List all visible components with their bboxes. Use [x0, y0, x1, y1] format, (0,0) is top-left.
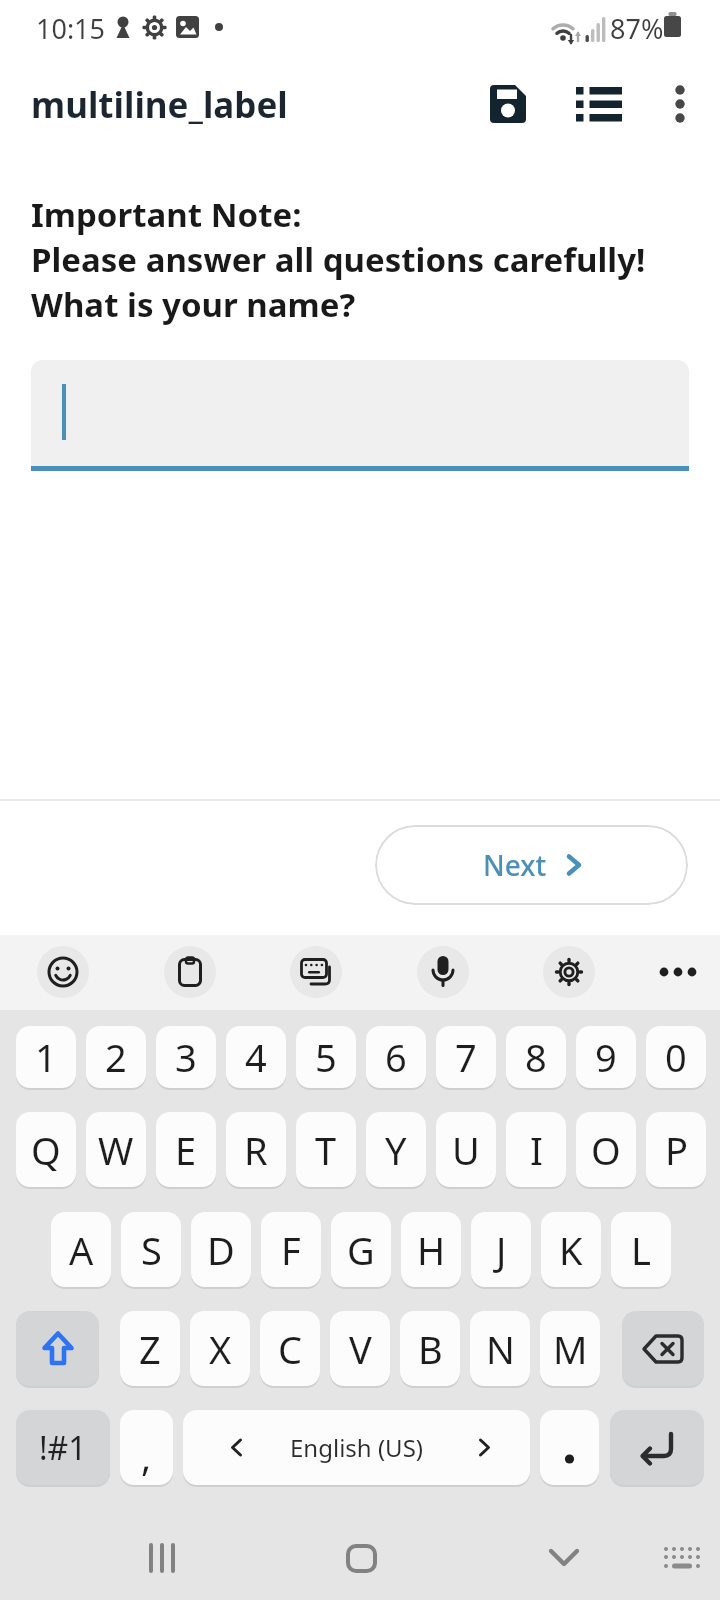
staticText: 5 — [315, 1031, 337, 1083]
staticText: multiline_label — [31, 81, 288, 129]
staticText: S — [141, 1224, 162, 1276]
staticText: 0 — [665, 1031, 687, 1083]
staticText: X — [209, 1323, 232, 1375]
staticText: 7 — [455, 1031, 477, 1083]
staticText: H — [417, 1224, 446, 1276]
button[interactable]: F — [261, 1212, 321, 1287]
button[interactable]: Q — [16, 1112, 76, 1187]
button[interactable]: V — [330, 1311, 390, 1386]
staticText: !#1 — [39, 1426, 87, 1470]
button[interactable]: O — [576, 1112, 636, 1187]
button[interactable]: Y — [366, 1112, 426, 1187]
button[interactable]: R — [226, 1112, 286, 1187]
button[interactable] — [417, 946, 469, 998]
button[interactable] — [534, 1528, 594, 1588]
button[interactable]: Z — [120, 1311, 180, 1386]
button[interactable] — [652, 1528, 712, 1588]
button[interactable]: N — [470, 1311, 530, 1386]
staticText: 2 — [105, 1031, 127, 1083]
button[interactable]: H — [401, 1212, 461, 1287]
button[interactable] — [610, 1410, 704, 1485]
staticText: Z — [139, 1323, 161, 1375]
button[interactable]: , — [120, 1410, 173, 1485]
staticText: T — [315, 1124, 337, 1176]
staticText: P — [665, 1124, 688, 1176]
button[interactable]: W — [86, 1112, 146, 1187]
button[interactable]: 5 — [296, 1026, 356, 1088]
staticText: Q — [31, 1124, 61, 1176]
button[interactable]: K — [541, 1212, 601, 1287]
button[interactable] — [37, 946, 89, 998]
button[interactable] — [164, 946, 216, 998]
button[interactable] — [573, 78, 625, 130]
staticText: 9 — [595, 1031, 617, 1083]
button[interactable] — [654, 78, 706, 130]
staticText: L — [631, 1224, 651, 1276]
button[interactable]: 0 — [646, 1026, 706, 1088]
staticText: K — [559, 1224, 583, 1276]
staticText: O — [591, 1124, 621, 1176]
staticText: 3 — [175, 1031, 197, 1083]
staticText: , — [141, 1430, 152, 1482]
staticText: E — [175, 1124, 197, 1176]
button[interactable] — [650, 946, 706, 998]
button[interactable]: C — [260, 1311, 320, 1386]
button[interactable]: U — [436, 1112, 496, 1187]
button[interactable] — [16, 1311, 99, 1386]
button[interactable]: !#1 — [16, 1410, 110, 1485]
button[interactable]: M — [540, 1311, 600, 1386]
button[interactable]: B — [400, 1311, 460, 1386]
button[interactable]: 4 — [226, 1026, 286, 1088]
staticText: D — [207, 1224, 235, 1276]
button[interactable] — [622, 1311, 704, 1386]
staticText: Next — [483, 846, 547, 884]
staticText: 8 — [525, 1031, 547, 1083]
staticText: Y — [385, 1124, 407, 1176]
button[interactable]: I — [506, 1112, 566, 1187]
staticText: M — [553, 1323, 588, 1375]
staticText: F — [281, 1224, 301, 1276]
button[interactable]: E — [156, 1112, 216, 1187]
staticText: I — [530, 1124, 543, 1176]
staticText: 6 — [385, 1031, 407, 1083]
button[interactable] — [290, 946, 342, 998]
button[interactable] — [128, 1528, 196, 1588]
button[interactable]: T — [296, 1112, 356, 1187]
staticText: Important Note: Please answer all questi… — [31, 192, 646, 327]
button[interactable]: Next — [375, 825, 688, 905]
button[interactable] — [330, 1528, 392, 1588]
staticText: G — [347, 1224, 375, 1276]
staticText: N — [486, 1323, 515, 1375]
staticText: V — [349, 1323, 372, 1375]
staticText: 4 — [245, 1031, 267, 1083]
button[interactable]: G — [331, 1212, 391, 1287]
staticText: C — [278, 1323, 303, 1375]
button[interactable]: J — [471, 1212, 531, 1287]
staticText: English (US) — [290, 1431, 424, 1464]
button[interactable]: 3 — [156, 1026, 216, 1088]
button[interactable]: P — [646, 1112, 706, 1187]
staticText: B — [418, 1323, 443, 1375]
button[interactable]: X — [190, 1311, 250, 1386]
button[interactable]: D — [191, 1212, 251, 1287]
button[interactable]: 9 — [576, 1026, 636, 1088]
button[interactable]: A — [51, 1212, 111, 1287]
button[interactable]: S — [121, 1212, 181, 1287]
button[interactable] — [543, 946, 595, 998]
staticText: 10:15 — [36, 10, 106, 47]
button[interactable]: L — [611, 1212, 671, 1287]
button[interactable]: 2 — [86, 1026, 146, 1088]
button[interactable] — [482, 78, 534, 130]
staticText: 87% — [610, 10, 664, 47]
staticText: 1 — [35, 1031, 57, 1083]
button[interactable]: 8 — [506, 1026, 566, 1088]
button[interactable]: 6 — [366, 1026, 426, 1088]
staticText: A — [69, 1224, 94, 1276]
button[interactable]: English (US) — [183, 1410, 530, 1485]
button[interactable] — [31, 360, 689, 471]
staticText: W — [98, 1124, 134, 1176]
staticText: U — [452, 1124, 480, 1176]
button[interactable] — [540, 1410, 599, 1485]
button[interactable]: 7 — [436, 1026, 496, 1088]
button[interactable]: 1 — [16, 1026, 76, 1088]
